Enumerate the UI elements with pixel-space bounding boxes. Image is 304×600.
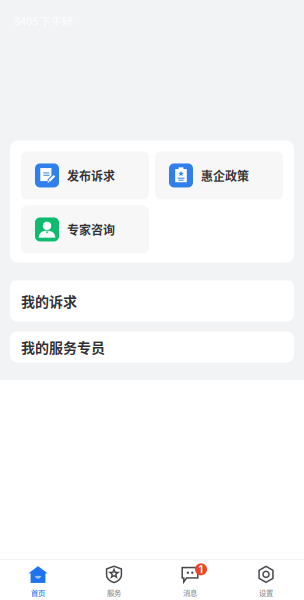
button[interactable]: 我的服务专员 bbox=[10, 331, 294, 362]
button[interactable]: 首页 bbox=[0, 559, 76, 600]
staticText: 服务 bbox=[107, 587, 121, 598]
button[interactable]: 服务 bbox=[76, 559, 152, 600]
staticText: 1 bbox=[198, 563, 203, 576]
staticText: 专家咨询 bbox=[67, 221, 115, 238]
button[interactable]: 我的诉求 bbox=[10, 280, 294, 321]
staticText: 我的诉求 bbox=[21, 291, 77, 311]
button[interactable]: 1 bbox=[152, 559, 228, 600]
button[interactable]: 设置 bbox=[228, 559, 304, 600]
staticText: 惠企政策 bbox=[201, 167, 249, 184]
staticText: 首页 bbox=[31, 587, 45, 598]
staticText: 3405 下午好 bbox=[14, 13, 73, 28]
button[interactable]: 惠企政策 bbox=[155, 151, 283, 199]
button[interactable]: 发布诉求 bbox=[21, 151, 149, 199]
button[interactable]: 专家咨询 bbox=[21, 205, 149, 253]
staticText: 发布诉求 bbox=[67, 167, 115, 184]
staticText: 我的服务专员 bbox=[21, 337, 105, 357]
staticText: 设置 bbox=[259, 587, 273, 598]
staticText: 消息 bbox=[183, 587, 197, 598]
